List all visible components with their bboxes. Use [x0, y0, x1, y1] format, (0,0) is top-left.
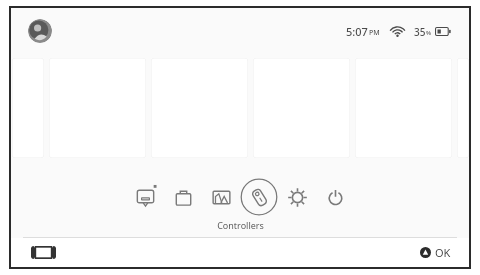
button[interactable]: OK — [420, 245, 451, 260]
button[interactable]: eShop — [164, 178, 202, 216]
button[interactable]: Console — [31, 246, 56, 259]
button[interactable]: Controllers — [240, 178, 278, 216]
button[interactable]: News — [126, 178, 164, 216]
staticText: % — [426, 29, 432, 37]
staticText: OK — [435, 245, 451, 260]
button[interactable]: User profile — [28, 19, 52, 43]
staticText: 35 — [414, 25, 426, 39]
staticText: 5:07 — [346, 24, 368, 39]
staticText: PM — [369, 28, 380, 38]
button[interactable]: Album — [202, 178, 240, 216]
button[interactable] — [457, 58, 469, 158]
staticText: Controllers — [217, 219, 264, 231]
button[interactable]: Settings — [278, 178, 316, 216]
button[interactable]: Power — [316, 178, 354, 216]
